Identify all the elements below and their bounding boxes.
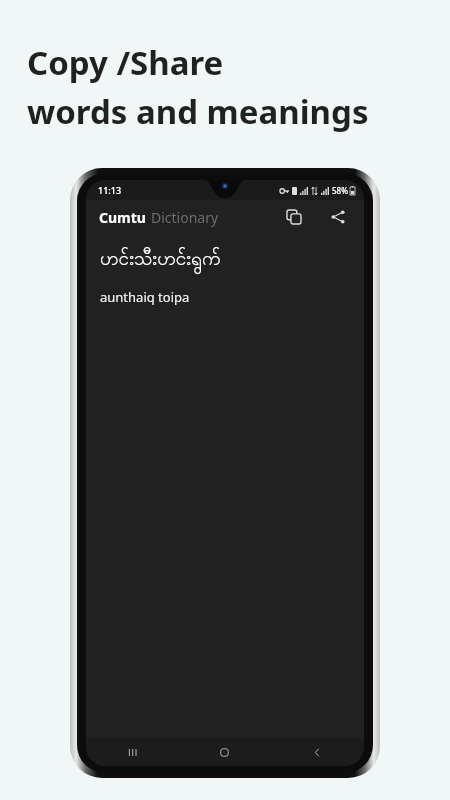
button[interactable]: Share [324, 203, 352, 231]
staticText: Copy /Share [27, 40, 224, 85]
staticText: Dictionary [151, 208, 219, 227]
staticText: 58% [332, 185, 348, 196]
staticText: ဟင်းသီးဟင်းရွက် [100, 246, 221, 274]
staticText: words and meanings [27, 89, 369, 134]
button[interactable]: Back [271, 738, 364, 766]
button[interactable]: Home [178, 738, 271, 766]
staticText: Cumtu [99, 208, 146, 227]
staticText: 11:13 [98, 184, 122, 196]
button[interactable]: Copy [280, 203, 308, 231]
button[interactable]: Recent apps [86, 738, 178, 766]
staticText: aunthaiq toipa [100, 288, 190, 306]
